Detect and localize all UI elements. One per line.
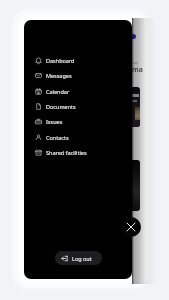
button[interactable]: Shared facilities bbox=[24, 145, 132, 160]
button[interactable]: Documents bbox=[24, 99, 132, 114]
staticText: Contacts bbox=[46, 134, 69, 141]
staticText: Calendar bbox=[46, 88, 70, 95]
button[interactable]: Calendar bbox=[24, 84, 132, 99]
button[interactable]: Log out bbox=[55, 251, 102, 265]
staticText: Messages bbox=[46, 72, 72, 79]
staticText: Dashboard bbox=[46, 57, 75, 64]
button[interactable]: Close navigation drawer bbox=[121, 217, 141, 237]
button[interactable]: Issues bbox=[24, 114, 132, 129]
staticText: Documents bbox=[46, 103, 76, 110]
staticText: Issues bbox=[46, 118, 63, 125]
button[interactable]: Dashboard bbox=[24, 53, 132, 68]
button[interactable]: Contacts bbox=[24, 130, 132, 145]
staticText: Information bbox=[115, 65, 143, 75]
staticText: Shared facilities bbox=[46, 149, 87, 156]
staticText: Log out bbox=[72, 255, 92, 262]
button[interactable]: Messages bbox=[24, 68, 132, 83]
